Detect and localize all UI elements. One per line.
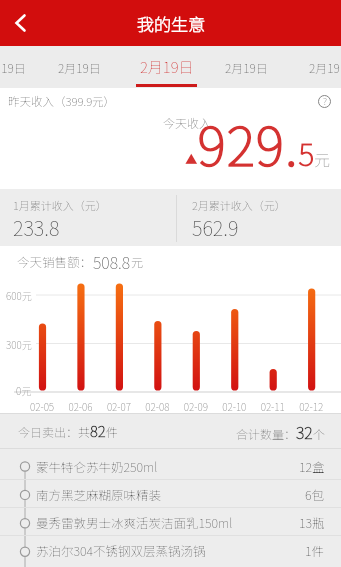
staticText: 2月19日 <box>225 59 268 76</box>
staticText: 我的生意 <box>137 11 205 36</box>
staticText: 合计数量：32个 <box>236 420 325 443</box>
staticText: 今日卖出：共82件 <box>18 420 118 442</box>
staticText: 508.8 <box>93 250 131 273</box>
button[interactable]: 苏泊尔304不锈钢双层蒸锅汤锅 <box>0 536 341 563</box>
button[interactable]: 蒙牛特仑苏牛奶250ml <box>0 452 341 479</box>
staticText: 562.9 <box>192 213 239 242</box>
button[interactable]: 2月19日 <box>58 59 101 76</box>
staticText: 1件 <box>305 541 325 559</box>
staticText: 233.8 <box>13 213 60 242</box>
button[interactable]: 南方黑芝麻糊原味精装 <box>0 480 341 507</box>
button[interactable]: 2月19日 <box>0 59 26 76</box>
button[interactable]: 曼秀雷敦男士冰爽活炭洁面乳150ml <box>0 508 341 535</box>
staticText: 12盒 <box>299 457 325 475</box>
button[interactable]: 2月19日 <box>309 59 341 76</box>
staticText: 2月19日 <box>140 56 194 78</box>
staticText: 昨天收入（399.9元） <box>8 93 116 110</box>
button[interactable] <box>0 0 40 46</box>
staticText: 元 <box>131 253 144 270</box>
button[interactable]: 2月19日 <box>140 56 194 78</box>
staticText: 今天收入 <box>163 114 212 131</box>
staticText: ? <box>323 95 327 108</box>
staticText: 2月19日 <box>58 59 101 76</box>
staticText: 曼秀雷敦男士冰爽活炭洁面乳150ml <box>36 513 233 531</box>
staticText: 2月19日 <box>309 59 341 76</box>
staticText: 13瓶 <box>299 513 325 531</box>
staticText: 2月累计收入（元） <box>192 197 286 213</box>
staticText: ▲929.5元 <box>185 103 331 181</box>
staticText: 苏泊尔304不锈钢双层蒸锅汤锅 <box>36 541 206 559</box>
staticText: 1月累计收入（元） <box>13 197 107 213</box>
staticText: 6包 <box>305 485 325 503</box>
staticText: 蒙牛特仑苏牛奶250ml <box>36 457 158 475</box>
button[interactable]: ? <box>318 95 331 108</box>
staticText: 南方黑芝麻糊原味精装 <box>36 485 162 503</box>
button[interactable] <box>0 246 341 413</box>
staticText: 今天销售额： <box>17 252 93 270</box>
staticText: 2月19日 <box>0 59 26 76</box>
button[interactable]: 2月19日 <box>225 59 268 76</box>
